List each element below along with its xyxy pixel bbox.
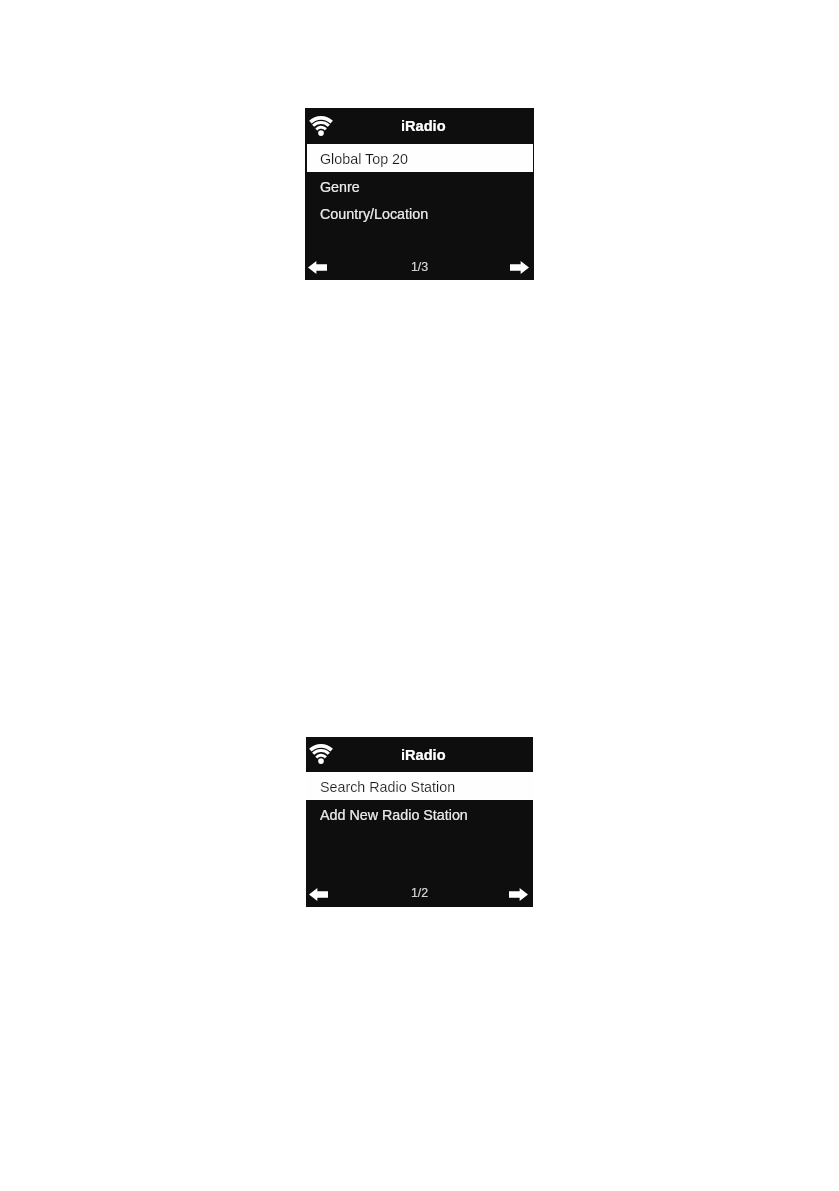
staticText: 1/2 xyxy=(306,886,533,900)
staticText: Country/Location xyxy=(320,206,429,222)
button[interactable]: Search Radio Station xyxy=(306,772,533,800)
button[interactable]: Previous page xyxy=(308,261,327,274)
button[interactable]: Add New Radio Station xyxy=(306,800,533,828)
staticText: iRadio xyxy=(401,118,446,134)
staticText: 1/3 xyxy=(305,260,534,274)
staticText: iRadio xyxy=(401,747,446,763)
button[interactable]: Next page xyxy=(510,261,529,274)
button[interactable]: Genre xyxy=(307,172,533,200)
staticText: Search Radio Station xyxy=(320,779,456,795)
button[interactable]: Previous page xyxy=(309,888,328,901)
button[interactable]: Next page xyxy=(509,888,528,901)
other: Wi-Fi signal xyxy=(309,744,333,764)
staticText: Add New Radio Station xyxy=(320,807,468,823)
button[interactable]: Global Top 20 xyxy=(307,144,533,172)
staticText: Global Top 20 xyxy=(320,151,408,167)
other: Wi-Fi signal xyxy=(309,116,333,136)
staticText: Genre xyxy=(320,179,360,195)
button[interactable]: Country/Location xyxy=(307,199,533,227)
